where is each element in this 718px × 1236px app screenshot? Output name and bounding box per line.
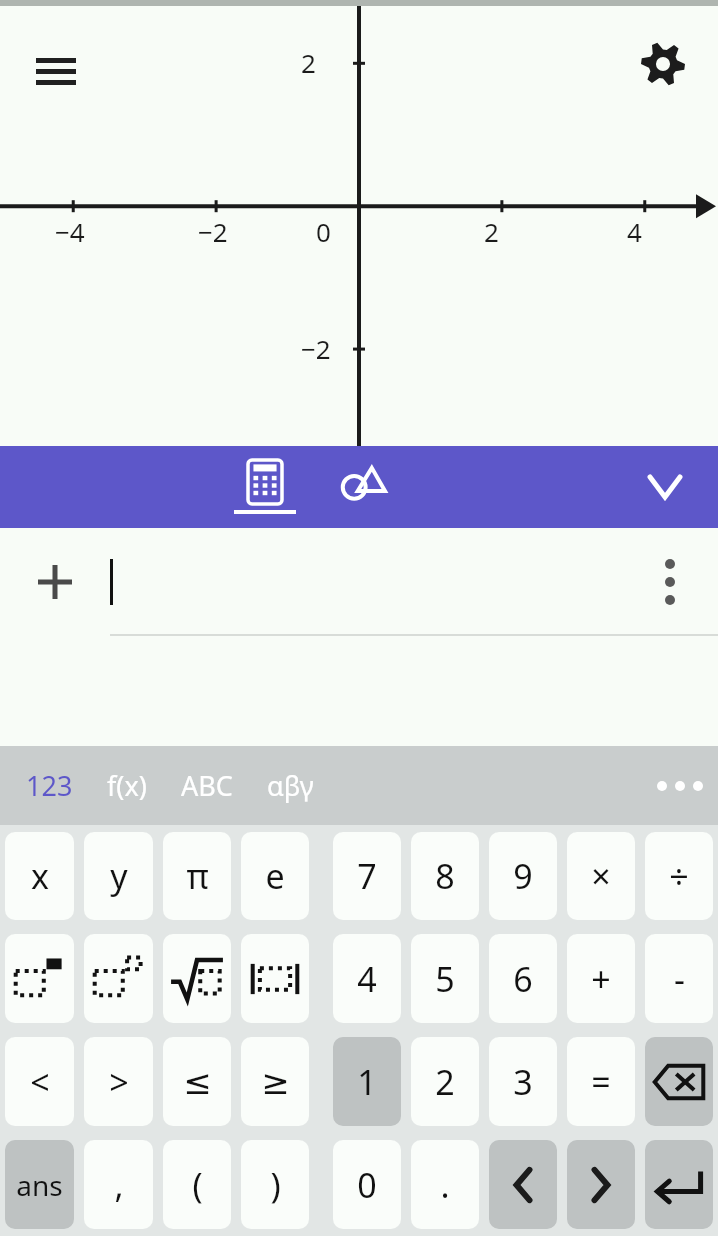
button[interactable]: 7 — [333, 832, 401, 920]
staticText: y — [110, 853, 128, 899]
button[interactable]: 4 — [333, 934, 401, 1023]
staticText: f(x) — [107, 767, 147, 804]
button[interactable]: 9 — [489, 832, 557, 920]
button[interactable]: x — [5, 832, 74, 920]
staticText: , — [114, 1162, 124, 1208]
button[interactable]: Backspace — [645, 1037, 713, 1126]
button[interactable]: < — [5, 1037, 74, 1126]
button[interactable]: Settings — [633, 34, 693, 94]
button[interactable]: × — [567, 832, 635, 920]
staticText: = — [591, 1059, 611, 1105]
staticText: ≥ — [261, 1062, 290, 1102]
button[interactable]: More — [642, 746, 718, 825]
staticText: αβγ — [267, 767, 314, 804]
button[interactable]: Square — [5, 934, 74, 1023]
button[interactable]: ÷ — [645, 832, 713, 920]
button[interactable]: Absolute value — [241, 934, 309, 1023]
button[interactable]: More options — [622, 528, 718, 636]
button[interactable]: Add — [0, 528, 110, 636]
staticText: 4 — [627, 214, 642, 249]
button[interactable]: . — [411, 1140, 479, 1229]
staticText: 2 — [435, 1059, 455, 1105]
button[interactable]: 8 — [411, 832, 479, 920]
staticText: + — [591, 956, 611, 1002]
staticText: π — [186, 853, 209, 899]
staticText: 2 — [301, 45, 316, 80]
staticText: ans — [16, 1166, 63, 1204]
staticText: 5 — [435, 956, 455, 1002]
button[interactable]: > — [84, 1037, 153, 1126]
button[interactable]: e — [241, 832, 309, 920]
button[interactable]: ( — [163, 1140, 231, 1229]
staticText: ) — [270, 1162, 281, 1208]
staticText: −2 — [198, 214, 228, 249]
button[interactable]: αβγ — [263, 746, 318, 825]
button[interactable]: Power — [84, 934, 153, 1023]
button[interactable]: 123 — [22, 746, 77, 825]
staticText: 0 — [316, 214, 331, 249]
staticText: 4 — [357, 956, 377, 1002]
staticText: 2 — [484, 214, 499, 249]
staticText: > — [109, 1059, 129, 1105]
button[interactable]: Square root — [163, 934, 231, 1023]
button[interactable]: Calculator — [222, 446, 308, 528]
staticText: 1 — [357, 1059, 377, 1105]
staticText: ABC — [181, 767, 233, 804]
button[interactable]: ≥ — [241, 1037, 309, 1126]
staticText: ≤ — [183, 1062, 212, 1102]
button[interactable]: Right — [567, 1140, 635, 1229]
staticText: . — [440, 1162, 450, 1208]
button[interactable]: 1 — [333, 1037, 401, 1126]
button[interactable]: 6 — [489, 934, 557, 1023]
staticText: - — [674, 956, 685, 1002]
staticText: 3 — [513, 1059, 533, 1105]
button[interactable]: ABC — [177, 746, 237, 825]
staticText: 0 — [357, 1162, 377, 1208]
button[interactable]: + — [567, 934, 635, 1023]
staticText: e — [265, 853, 285, 899]
staticText: −4 — [55, 214, 85, 249]
staticText: 7 — [357, 853, 377, 899]
button[interactable]: - — [645, 934, 713, 1023]
button[interactable]: Enter — [645, 1140, 713, 1229]
staticText: ( — [192, 1162, 203, 1208]
button[interactable]: = — [567, 1037, 635, 1126]
staticText: < — [30, 1059, 50, 1105]
staticText: −2 — [301, 331, 331, 366]
button[interactable]: f(x) — [103, 746, 151, 825]
button[interactable]: ans — [5, 1140, 74, 1229]
button[interactable]: Left — [489, 1140, 557, 1229]
staticText: 6 — [513, 956, 533, 1002]
staticText: x — [31, 853, 49, 899]
button[interactable]: ≤ — [163, 1037, 231, 1126]
staticText: × — [591, 853, 611, 899]
button[interactable]: Collapse — [620, 446, 710, 528]
staticText: ÷ — [669, 853, 689, 899]
button[interactable]: y — [84, 832, 153, 920]
button[interactable]: ) — [241, 1140, 309, 1229]
button[interactable]: 0 — [333, 1140, 401, 1229]
button[interactable]: , — [84, 1140, 153, 1229]
staticText: 123 — [26, 767, 73, 804]
staticText: 9 — [513, 853, 533, 899]
staticText: 8 — [435, 853, 455, 899]
button[interactable]: π — [163, 832, 231, 920]
button[interactable]: Menu — [28, 42, 84, 98]
button[interactable]: 5 — [411, 934, 479, 1023]
button[interactable]: 3 — [489, 1037, 557, 1126]
button[interactable]: 2 — [411, 1037, 479, 1126]
button[interactable]: Tools — [328, 446, 398, 528]
